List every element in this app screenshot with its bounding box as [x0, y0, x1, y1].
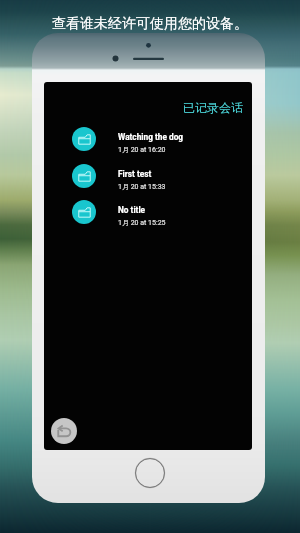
button[interactable]: No title	[68, 194, 252, 230]
staticText: 已记录会话	[183, 100, 243, 115]
staticText: 1月 20 at 16:20	[118, 145, 166, 154]
staticText: 1月 20 at 15:25	[118, 218, 166, 227]
staticText: Watching the dog	[118, 132, 184, 142]
staticText: First test	[118, 169, 152, 179]
button[interactable]: Back	[51, 418, 77, 444]
button[interactable]: First test	[68, 158, 252, 194]
staticText: 1月 20 at 15:33	[118, 182, 166, 191]
button[interactable]: Watching the dog	[68, 121, 252, 157]
staticText: No title	[118, 205, 146, 215]
staticText: 查看谁未经许可使用您的设备。	[52, 15, 248, 33]
